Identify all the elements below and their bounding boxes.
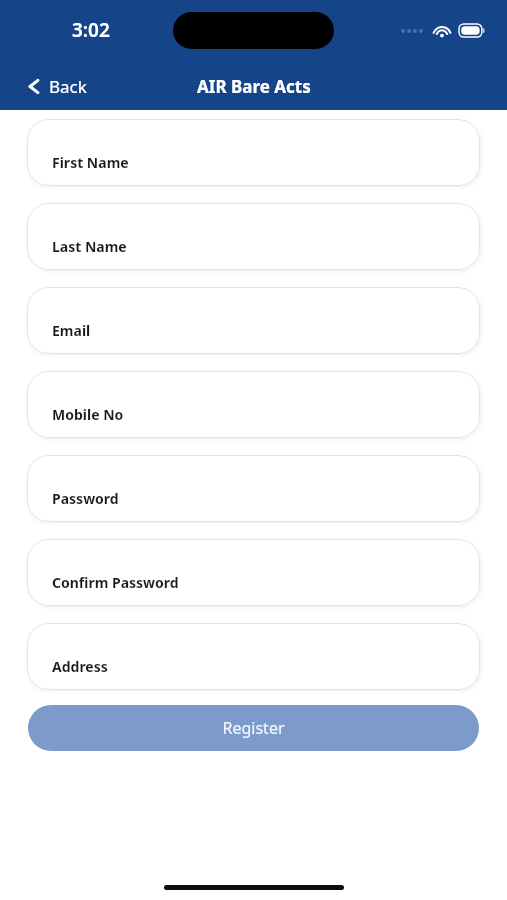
button[interactable]: Register xyxy=(28,705,479,751)
staticText: Password xyxy=(52,489,119,508)
staticText: Last Name xyxy=(52,237,127,256)
button[interactable]: Confirm Password xyxy=(27,539,480,606)
staticText: Back xyxy=(49,75,87,98)
staticText: AIR Bare Acts xyxy=(197,75,311,98)
staticText: Register xyxy=(222,717,285,739)
button[interactable]: First Name xyxy=(27,119,480,186)
staticText: Mobile No xyxy=(52,405,124,424)
button[interactable]: Back xyxy=(0,69,99,104)
button[interactable]: Last Name xyxy=(27,203,480,270)
staticText: Confirm Password xyxy=(52,573,179,592)
button[interactable]: Password xyxy=(27,455,480,522)
staticText: 3:02 xyxy=(72,17,110,43)
staticText: Email xyxy=(52,321,91,340)
staticText: Address xyxy=(52,657,108,676)
staticText: First Name xyxy=(52,153,129,172)
button[interactable]: Mobile No xyxy=(27,371,480,438)
button[interactable]: Address xyxy=(27,623,480,690)
button[interactable]: Email xyxy=(27,287,480,354)
